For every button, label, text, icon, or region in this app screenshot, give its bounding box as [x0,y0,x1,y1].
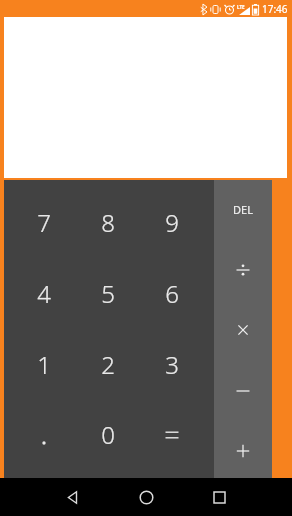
staticText: LTE [237,4,245,10]
staticText: DEL [233,202,253,217]
button[interactable]: Home [120,478,172,516]
button[interactable]: 1 [12,329,76,400]
button[interactable]: Multiply [214,300,272,360]
button[interactable]: 9 [140,187,204,258]
staticText: 9 [165,206,179,239]
button[interactable]: Add [214,421,272,481]
button[interactable]: 5 [76,258,140,329]
button[interactable]: 4 [12,258,76,329]
staticText: 4 [37,277,51,310]
staticText: 1 [37,348,51,381]
button[interactable]: 8 [76,187,140,258]
button[interactable]: 0 [76,399,140,470]
staticText: 5 [101,277,115,310]
button[interactable]: 7 [12,187,76,258]
button[interactable]: 6 [140,258,204,329]
staticText: 17:46 [262,2,288,16]
staticText: 3 [165,348,179,381]
staticText: 0 [101,418,115,451]
button[interactable]: Back [47,478,99,516]
staticText: 2 [101,348,115,381]
staticText: 8 [101,206,115,239]
button[interactable] [12,399,76,470]
staticText: 7 [37,206,51,239]
button[interactable]: Delete [214,179,272,239]
button[interactable]: 2 [76,329,140,400]
button[interactable]: Subtract [214,361,272,421]
staticText: 6 [165,277,179,310]
button[interactable]: Recents [193,478,245,516]
button[interactable] [140,399,204,470]
button[interactable]: Divide [214,240,272,300]
button[interactable]: 3 [140,329,204,400]
